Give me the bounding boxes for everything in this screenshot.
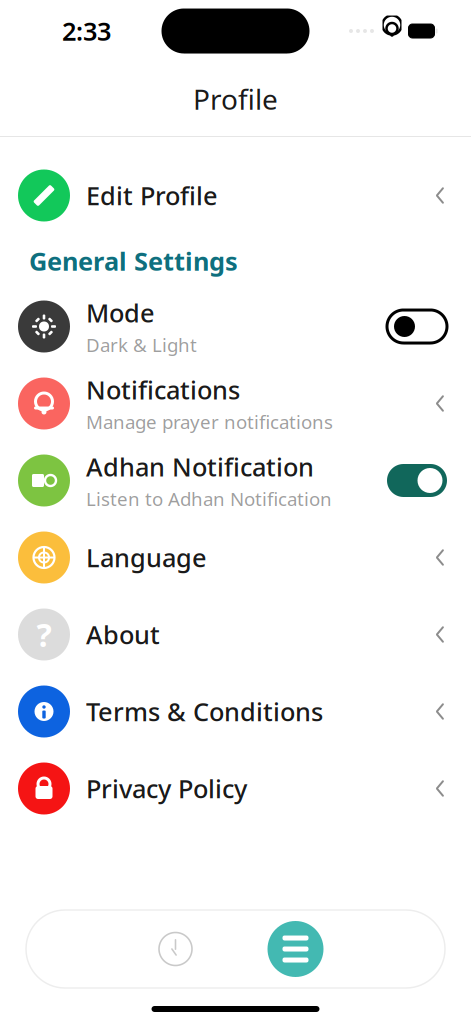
button[interactable]: Adhan Notification bbox=[0, 442, 471, 519]
staticText: 2:33 bbox=[62, 14, 111, 48]
button[interactable]: Terms & Conditions bbox=[0, 673, 471, 750]
button[interactable]: Privacy Policy bbox=[0, 750, 471, 827]
button[interactable]: Mode bbox=[0, 288, 471, 365]
staticText: Privacy Policy bbox=[86, 772, 247, 805]
staticText: Profile bbox=[193, 80, 278, 118]
staticText: General Settings bbox=[29, 244, 238, 278]
button[interactable]: ? bbox=[0, 596, 471, 673]
staticText: Terms & Conditions bbox=[86, 695, 323, 728]
button[interactable]: Notifications bbox=[0, 365, 471, 442]
staticText: Listen to Adhan Notification bbox=[86, 486, 332, 511]
button[interactable]: Menu bbox=[235, 914, 355, 984]
button[interactable]: Edit Profile bbox=[0, 157, 471, 234]
staticText: Edit Profile bbox=[86, 179, 218, 212]
staticText: Dark & Light bbox=[86, 332, 197, 357]
staticText: About bbox=[86, 618, 160, 651]
button[interactable]: Prayer times bbox=[115, 914, 235, 984]
staticText: Manage prayer notifications bbox=[86, 409, 333, 434]
staticText: ? bbox=[36, 613, 51, 656]
staticText: Adhan Notification bbox=[86, 450, 314, 483]
button[interactable]: Language bbox=[0, 519, 471, 596]
staticText: Language bbox=[86, 541, 207, 574]
staticText: Notifications bbox=[86, 373, 240, 406]
staticText: Mode bbox=[86, 296, 155, 329]
